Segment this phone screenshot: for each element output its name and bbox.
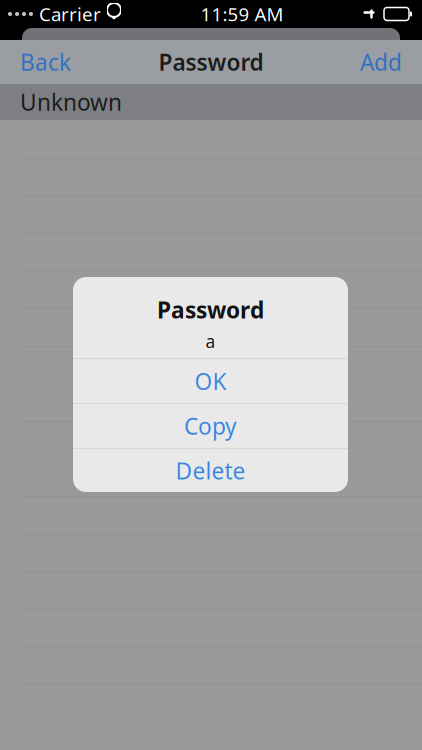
button[interactable]: Copy (73, 404, 348, 448)
staticText: Add (360, 47, 402, 77)
button[interactable]: Add (340, 40, 422, 84)
staticText: OK (194, 366, 226, 396)
staticText: a (205, 330, 215, 353)
button[interactable]: OK (73, 359, 348, 403)
staticText: Unknown (20, 87, 122, 117)
button[interactable]: Back (0, 40, 91, 84)
staticText: 11:59 AM (200, 2, 283, 26)
staticText: Delete (175, 456, 245, 486)
button[interactable]: Delete (73, 449, 348, 493)
staticText: Back (20, 47, 71, 77)
staticText: Password (158, 47, 263, 77)
staticText: Copy (184, 411, 237, 441)
staticText: Carrier (39, 2, 101, 26)
staticText: Password (157, 295, 264, 325)
